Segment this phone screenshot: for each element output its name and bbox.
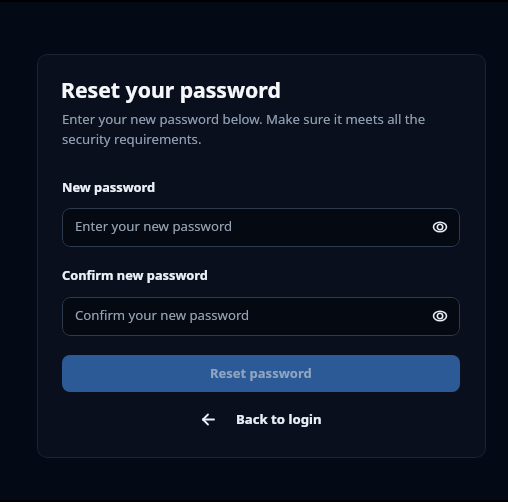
staticText: Confirm new password: [62, 266, 208, 283]
staticText: New password: [62, 178, 156, 195]
staticText: Confirm your new password: [75, 306, 250, 324]
staticText: Enter your new password below. Make sure…: [62, 110, 426, 148]
staticText: Enter your new password: [75, 217, 233, 235]
button[interactable]: Enter your new password: [62, 208, 460, 247]
button[interactable]: [429, 216, 451, 238]
button[interactable]: Confirm your new password: [62, 297, 460, 336]
staticText: Back to login: [236, 410, 322, 428]
button[interactable]: Back to login: [199, 408, 324, 430]
staticText: Reset password: [210, 364, 312, 382]
button[interactable]: Reset password: [62, 355, 460, 392]
staticText: Reset your password: [61, 75, 281, 104]
button[interactable]: [429, 305, 451, 327]
